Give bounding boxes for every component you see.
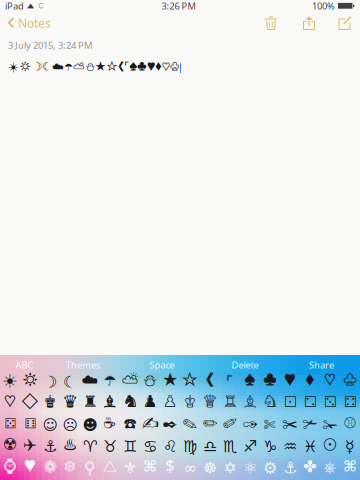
button[interactable]: ⚁︎ — [300, 393, 320, 414]
button[interactable]: ♦︎ — [300, 371, 320, 392]
button[interactable]: ♔︎ — [180, 393, 200, 414]
button[interactable]: ☉︎ — [320, 436, 340, 457]
button[interactable]: ✁︎ — [320, 414, 340, 435]
button[interactable]: ∞︎ — [180, 457, 200, 478]
button[interactable]: ⚀︎ — [280, 393, 300, 414]
button[interactable]: ☸︎ — [200, 457, 220, 478]
button[interactable]: ☁︎ — [80, 371, 100, 392]
button[interactable]: ☽︎ — [40, 371, 60, 392]
button[interactable]: ❁︎ — [40, 457, 60, 478]
button[interactable]: ♎︎ — [200, 436, 220, 457]
button[interactable]: ⎈︎ — [320, 457, 340, 478]
button[interactable]: ◇︎ — [20, 393, 40, 414]
button[interactable]: ⚃︎ — [340, 393, 360, 414]
button[interactable]: Delete note — [259, 12, 283, 34]
button[interactable]: ☂︎ — [100, 371, 120, 392]
button[interactable]: ⌘︎ — [340, 457, 360, 478]
button[interactable]: ♛︎ — [60, 393, 80, 414]
button[interactable]: New note — [333, 12, 357, 34]
button[interactable]: ☕︎ — [100, 414, 120, 435]
button[interactable]: ☺︎ — [40, 414, 60, 435]
button[interactable]: ♜︎ — [80, 393, 100, 414]
button[interactable]: ✒︎ — [160, 414, 180, 435]
button[interactable]: ⌚︎ — [0, 457, 20, 478]
button[interactable]: ♍︎ — [180, 436, 200, 457]
button[interactable]: ♠︎ — [240, 371, 260, 392]
button[interactable]: ♥︎ — [280, 371, 300, 392]
button[interactable]: ♞︎ — [120, 393, 140, 414]
button[interactable]: ✡︎ — [220, 457, 240, 478]
button[interactable]: ✤︎ — [300, 457, 320, 478]
button[interactable]: Themes — [49, 355, 117, 375]
button[interactable]: ⚓︎ — [40, 436, 60, 457]
button[interactable]: ☀︎ — [0, 371, 20, 392]
button[interactable]: ♨︎ — [60, 436, 80, 457]
button[interactable]: ⚄︎ — [0, 414, 20, 435]
button[interactable]: Share — [283, 355, 360, 375]
button[interactable]: Share — [297, 12, 321, 34]
button[interactable]: ⚅︎ — [20, 414, 40, 435]
button[interactable]: ✄︎ — [260, 414, 280, 435]
button[interactable]: ♊︎ — [120, 436, 140, 457]
button[interactable]: ♉︎ — [100, 436, 120, 457]
button[interactable]: ♖︎ — [220, 393, 240, 414]
button[interactable]: ✐︎ — [220, 414, 240, 435]
button[interactable]: Delete — [207, 355, 283, 375]
button[interactable]: ⚙︎ — [260, 457, 280, 478]
button[interactable]: ☾︎ — [60, 371, 80, 392]
button[interactable]: ♘︎ — [260, 393, 280, 414]
button[interactable]: ⛅︎ — [120, 371, 140, 392]
button[interactable]: ⚓︎ — [280, 457, 300, 478]
button[interactable]: ♏︎ — [220, 436, 240, 457]
button[interactable]: ♥︎ — [20, 457, 40, 478]
button[interactable]: ⚜︎ — [120, 457, 140, 478]
button[interactable]: ⛄︎ — [140, 371, 160, 392]
button[interactable]: ⌜︎ — [220, 371, 240, 392]
button[interactable]: ⚛︎ — [240, 457, 260, 478]
button[interactable]: ⚲︎ — [80, 457, 100, 478]
button[interactable]: ❮︎ — [200, 371, 220, 392]
button[interactable]: ⌘︎ — [140, 457, 160, 478]
button[interactable]: ABC — [0, 355, 49, 375]
button[interactable]: ♝︎ — [100, 393, 120, 414]
button[interactable]: ★︎ — [160, 371, 180, 392]
button[interactable]: ☢︎ — [0, 436, 20, 457]
button[interactable]: ♣︎ — [260, 371, 280, 392]
staticText: ✍︎ — [141, 412, 158, 437]
button[interactable]: ♌︎ — [160, 436, 180, 457]
button[interactable]: ♧︎ — [340, 371, 360, 392]
button[interactable]: $︎ — [160, 457, 180, 478]
button[interactable]: ♐︎ — [240, 436, 260, 457]
button[interactable]: ✃︎ — [300, 414, 320, 435]
button[interactable]: ♚︎ — [40, 393, 60, 414]
button[interactable]: ♟︎ — [140, 393, 160, 414]
button[interactable]: ✂︎ — [280, 414, 300, 435]
button[interactable]: ♑︎ — [260, 436, 280, 457]
button[interactable]: ❆︎ — [60, 457, 80, 478]
button[interactable]: ✑︎ — [240, 414, 260, 435]
button[interactable]: ☻︎ — [80, 414, 100, 435]
button[interactable]: ♡︎ — [320, 371, 340, 392]
button[interactable]: ✍︎ — [140, 414, 160, 435]
button[interactable]: ♒︎ — [280, 436, 300, 457]
button[interactable]: △︎ — [100, 457, 120, 478]
button[interactable]: ♙︎ — [160, 393, 180, 414]
button[interactable]: ✈︎ — [20, 436, 40, 457]
button[interactable]: ✏︎ — [200, 414, 220, 435]
button[interactable]: ♈︎ — [80, 436, 100, 457]
button[interactable]: ♕︎ — [200, 393, 220, 414]
button[interactable]: ☹︎ — [60, 414, 80, 435]
button[interactable]: Space — [117, 355, 207, 375]
button[interactable]: ☆︎ — [180, 371, 200, 392]
button[interactable]: ♓︎ — [300, 436, 320, 457]
button[interactable]: ♗︎ — [240, 393, 260, 414]
button[interactable]: ☎︎ — [120, 414, 140, 435]
button[interactable]: ♋︎ — [140, 436, 160, 457]
button[interactable]: ☼︎ — [20, 371, 40, 392]
button[interactable]: ☿︎ — [340, 436, 360, 457]
button[interactable]: ♡︎ — [0, 393, 20, 414]
button[interactable]: ✎︎ — [180, 414, 200, 435]
button[interactable]: ⚂︎ — [320, 393, 340, 414]
button[interactable]: Notes — [0, 12, 58, 34]
button[interactable]: ⚾︎ — [340, 414, 360, 435]
